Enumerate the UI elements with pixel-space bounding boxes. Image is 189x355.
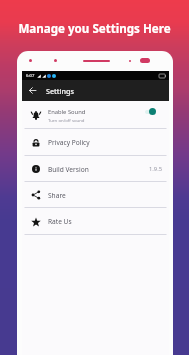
staticText: Enable Sound — [48, 108, 86, 116]
button[interactable]: Back — [26, 84, 39, 97]
staticText: Rate Us — [48, 217, 163, 226]
staticText: 1.9.5 — [149, 165, 163, 173]
staticText: Privacy Policy — [48, 138, 163, 147]
staticText: Turn on/off sound — [48, 117, 85, 123]
staticText: Share — [48, 191, 163, 200]
button[interactable]: Rate Us — [22, 208, 169, 235]
staticText: Build Version — [48, 165, 149, 174]
button[interactable]: Build Version — [22, 156, 169, 182]
staticText: 6:07 — [26, 73, 35, 79]
staticText: Settings — [46, 86, 74, 96]
button[interactable]: Share — [22, 182, 169, 208]
button[interactable]: Privacy Policy — [22, 129, 169, 156]
staticText: Manage you Settings Here — [0, 21, 189, 37]
button[interactable]: Enable Sound — [22, 101, 169, 129]
